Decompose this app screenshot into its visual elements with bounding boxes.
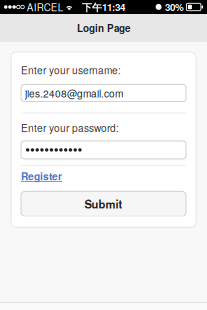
staticText: Enter your password: [21, 120, 119, 135]
staticText: Login Page [77, 21, 130, 35]
staticText: 30% [165, 0, 184, 14]
staticText: Submit [84, 196, 122, 212]
button[interactable]: Submit [21, 183, 186, 216]
staticText: Enter your username: [21, 62, 121, 77]
staticText: jies.2408@gmail.com [25, 86, 123, 100]
staticText: Register [21, 169, 62, 183]
staticText: 下午11:34 [82, 0, 125, 14]
button[interactable]: Register [21, 166, 62, 183]
staticText: AIRCEL [27, 0, 63, 14]
